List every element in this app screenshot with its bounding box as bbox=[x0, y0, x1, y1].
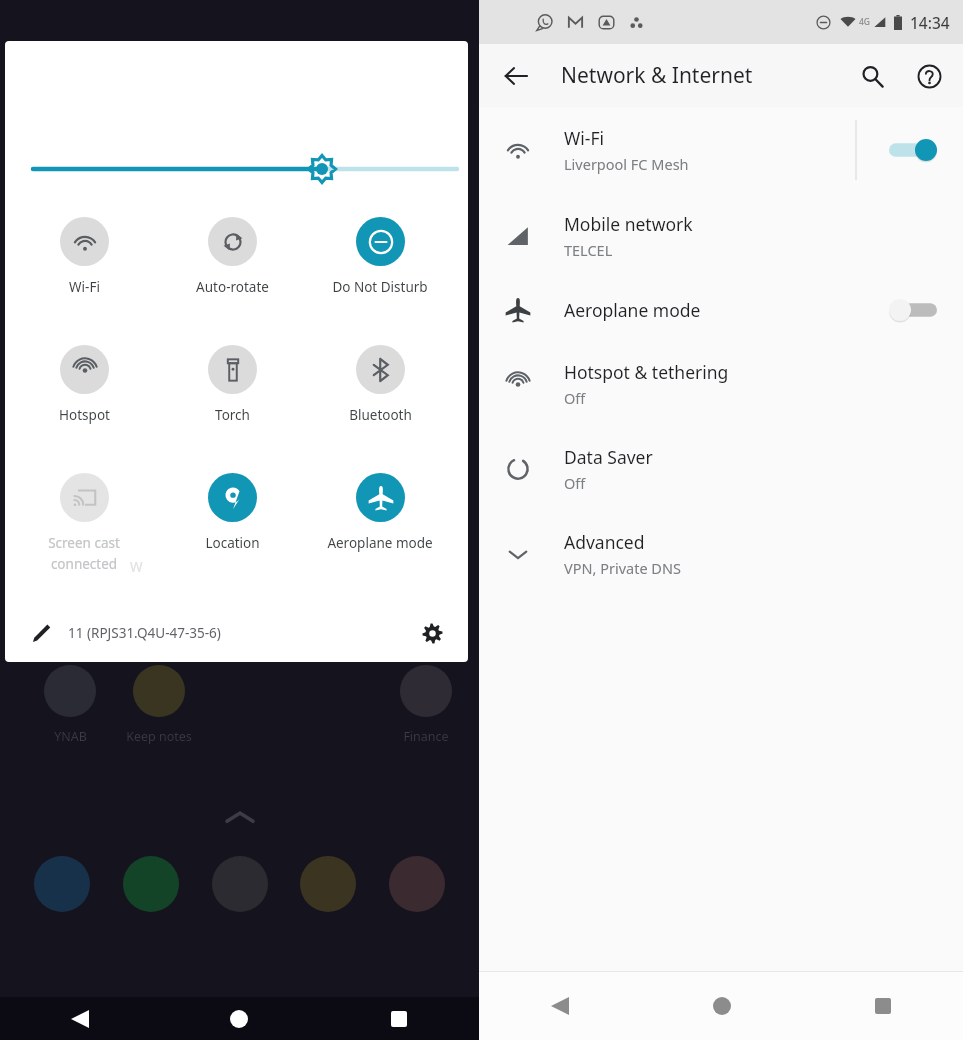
button[interactable]: App bbox=[300, 856, 356, 912]
button[interactable]: Recents bbox=[377, 997, 421, 1040]
staticText: Data Saver bbox=[564, 445, 653, 469]
staticText: Wi-Fi bbox=[564, 126, 605, 150]
button[interactable]: Help bbox=[906, 53, 952, 99]
button[interactable]: Do Not Disturb bbox=[310, 217, 450, 296]
button[interactable]: Location bbox=[162, 473, 302, 552]
button[interactable]: Auto-rotate bbox=[162, 217, 302, 296]
staticText: Finance bbox=[403, 728, 449, 745]
button[interactable]: Aeroplane mode bbox=[310, 473, 450, 552]
button[interactable]: Back bbox=[493, 53, 539, 99]
staticText: Aeroplane mode bbox=[327, 534, 433, 552]
button[interactable]: Data Saver bbox=[479, 426, 963, 511]
button[interactable]: Aeroplane mode bbox=[479, 278, 963, 341]
button[interactable]: Edit tiles bbox=[26, 618, 56, 648]
staticText: Liverpool FC Mesh bbox=[564, 154, 689, 174]
staticText: Location bbox=[205, 534, 260, 552]
button[interactable]: YNAB bbox=[32, 665, 108, 745]
button[interactable]: App bbox=[212, 856, 268, 912]
button[interactable]: Keep notes bbox=[121, 665, 197, 745]
button[interactable]: Wi-Fi switch bbox=[884, 130, 942, 170]
button[interactable]: Home bbox=[217, 997, 261, 1040]
button[interactable]: App bbox=[389, 856, 445, 912]
staticText: 4G bbox=[859, 16, 871, 28]
button[interactable]: Settings bbox=[417, 618, 447, 648]
staticText: Aeroplane mode bbox=[564, 298, 701, 322]
staticText: Do Not Disturb bbox=[332, 278, 428, 296]
button[interactable]: Wi-Fi bbox=[14, 217, 154, 296]
button[interactable]: App bbox=[123, 856, 179, 912]
staticText: YNAB bbox=[54, 728, 87, 745]
button[interactable]: Recents bbox=[861, 984, 905, 1028]
button[interactable]: App bbox=[34, 856, 90, 912]
staticText: 14:34 bbox=[910, 12, 950, 33]
button[interactable]: Aeroplane mode switch bbox=[884, 290, 942, 330]
staticText: Screen cast connected bbox=[23, 534, 145, 573]
staticText: Keep notes bbox=[126, 728, 192, 745]
button[interactable]: Torch bbox=[162, 345, 302, 424]
button[interactable]: Hotspot & tethering bbox=[479, 341, 963, 426]
button[interactable]: Home bbox=[700, 984, 744, 1028]
staticText: Advanced bbox=[564, 530, 645, 554]
staticText: Off bbox=[564, 473, 586, 493]
staticText: Network & Internet bbox=[561, 61, 753, 90]
staticText: W bbox=[130, 558, 143, 576]
button[interactable]: Finance bbox=[388, 665, 464, 745]
button[interactable]: Back bbox=[538, 984, 582, 1028]
staticText: Auto-rotate bbox=[196, 278, 269, 296]
button[interactable]: Screen cast connected bbox=[23, 473, 145, 573]
staticText: Mobile network bbox=[564, 212, 693, 236]
button[interactable]: Hotspot bbox=[14, 345, 154, 424]
staticText: TELCEL bbox=[564, 240, 613, 260]
button[interactable]: Back bbox=[58, 997, 102, 1040]
button[interactable]: Bluetooth bbox=[310, 345, 450, 424]
staticText: Hotspot bbox=[59, 406, 110, 424]
button[interactable]: Wi-Fi bbox=[479, 107, 963, 193]
button[interactable]: Advanced bbox=[479, 511, 963, 596]
button[interactable]: Brightness bbox=[5, 149, 468, 189]
staticText: Torch bbox=[215, 406, 250, 424]
staticText: VPN, Private DNS bbox=[564, 558, 681, 578]
staticText: Off bbox=[564, 388, 586, 408]
staticText: Wi-Fi bbox=[69, 278, 100, 296]
button[interactable]: Mobile network bbox=[479, 193, 963, 278]
staticText: 11 (RPJS31.Q4U-47-35-6) bbox=[68, 624, 221, 642]
staticText: Bluetooth bbox=[349, 406, 412, 424]
staticText: Hotspot & tethering bbox=[564, 360, 729, 384]
button[interactable]: Search bbox=[849, 53, 895, 99]
